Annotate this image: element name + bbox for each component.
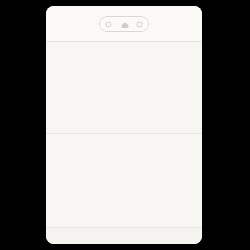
button[interactable]: Recent apps — [134, 19, 145, 30]
button[interactable]: Home — [119, 19, 130, 30]
button[interactable]: Back — [103, 19, 114, 30]
